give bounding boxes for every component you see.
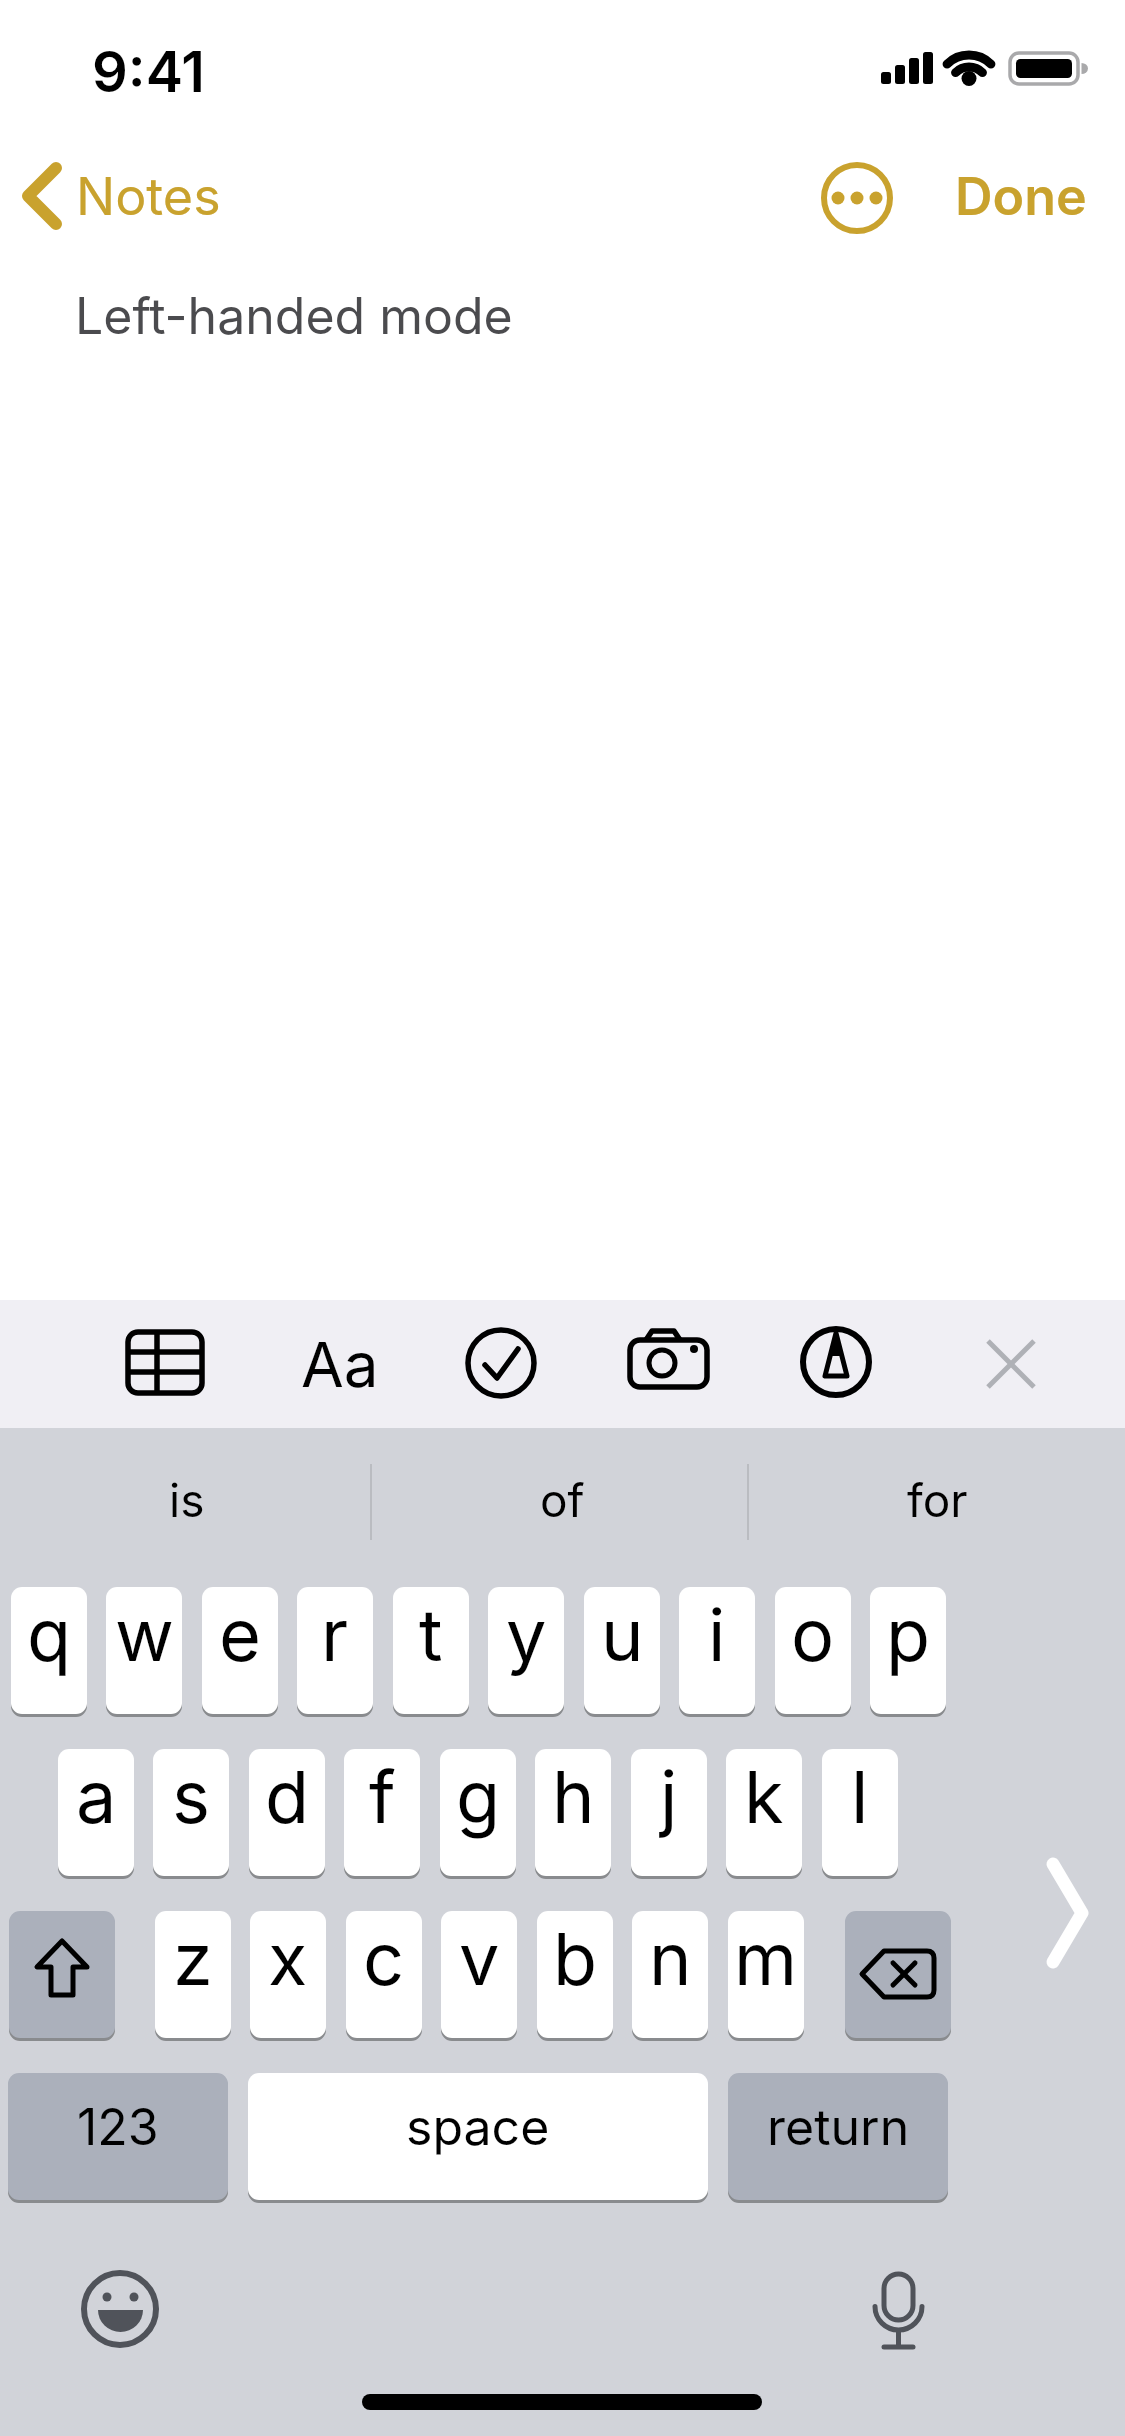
button[interactable]: is [7,1440,367,1560]
staticText: a [76,1753,117,1840]
staticText: w [115,1591,174,1678]
staticText: x [268,1915,308,2002]
button[interactable]: w [106,1587,182,1714]
staticText: Done [955,165,1087,228]
button[interactable]: n [632,1911,708,2038]
button[interactable] [795,1318,880,1410]
staticText: f [369,1753,396,1840]
button[interactable] [460,1318,545,1410]
staticText: v [459,1915,500,2002]
button[interactable]: Notes [16,160,226,236]
staticText: s [172,1753,211,1840]
button[interactable]: k [726,1749,802,1876]
button[interactable]: r [297,1587,373,1714]
button[interactable]: d [249,1749,325,1876]
button[interactable] [9,1911,115,2038]
staticText: p [886,1591,931,1678]
staticText: e [219,1591,261,1678]
button[interactable]: u [584,1587,660,1714]
staticText: c [363,1915,405,2002]
button[interactable]: Done [950,165,1085,231]
button[interactable] [850,2255,946,2365]
button[interactable]: s [153,1749,229,1876]
button[interactable] [70,2258,174,2362]
button[interactable]: f [344,1749,420,1876]
button[interactable]: j [631,1749,707,1876]
button[interactable] [615,1318,720,1410]
staticText: 9:41 [92,38,205,106]
staticText: space [406,2097,550,2157]
button[interactable]: p [870,1587,946,1714]
button[interactable]: v [441,1911,517,2038]
staticText: r [321,1591,349,1678]
button[interactable] [820,160,896,236]
staticText: of [540,1472,585,1528]
button[interactable] [110,1318,220,1410]
button[interactable]: e [202,1587,278,1714]
button[interactable]: of [382,1440,742,1560]
staticText: d [265,1753,310,1840]
staticText: m [734,1915,798,2002]
button[interactable]: Aa [290,1318,390,1410]
button[interactable] [1010,1840,1125,1985]
button[interactable] [965,1318,1060,1410]
button[interactable]: t [393,1587,469,1714]
button[interactable]: y [488,1587,564,1714]
staticText: h [552,1753,595,1840]
staticText: i [708,1591,726,1678]
button[interactable]: o [775,1587,851,1714]
button[interactable]: return [728,2073,948,2200]
staticText: t [419,1591,443,1678]
staticText: z [173,1915,213,2002]
staticText: k [744,1753,784,1840]
staticText: u [601,1591,644,1678]
button[interactable]: z [155,1911,231,2038]
button[interactable]: m [728,1911,804,2038]
button[interactable]: b [537,1911,613,2038]
button[interactable]: h [535,1749,611,1876]
button[interactable]: l [822,1749,898,1876]
staticText: Left-handed mode [75,286,513,346]
staticText: g [456,1753,501,1840]
button[interactable]: for [757,1440,1117,1560]
button[interactable]: space [248,2073,708,2200]
staticText: o [791,1591,835,1678]
staticText: y [506,1591,547,1678]
staticText: is [169,1472,205,1528]
staticText: for [907,1472,968,1528]
staticText: n [649,1915,692,2002]
button[interactable]: a [58,1749,134,1876]
button[interactable]: i [679,1587,755,1714]
staticText: q [27,1591,72,1678]
button[interactable]: 123 [8,2073,228,2200]
button[interactable]: q [11,1587,87,1714]
staticText: j [660,1753,678,1840]
staticText: Notes [76,165,221,228]
button[interactable]: x [250,1911,326,2038]
button[interactable]: g [440,1749,516,1876]
staticText: return [767,2097,910,2157]
staticText: 123 [77,2097,159,2157]
staticText: l [851,1753,869,1840]
button[interactable] [845,1911,951,2038]
staticText: b [553,1915,598,2002]
button[interactable]: c [346,1911,422,2038]
staticText: Aa [301,1327,379,1402]
